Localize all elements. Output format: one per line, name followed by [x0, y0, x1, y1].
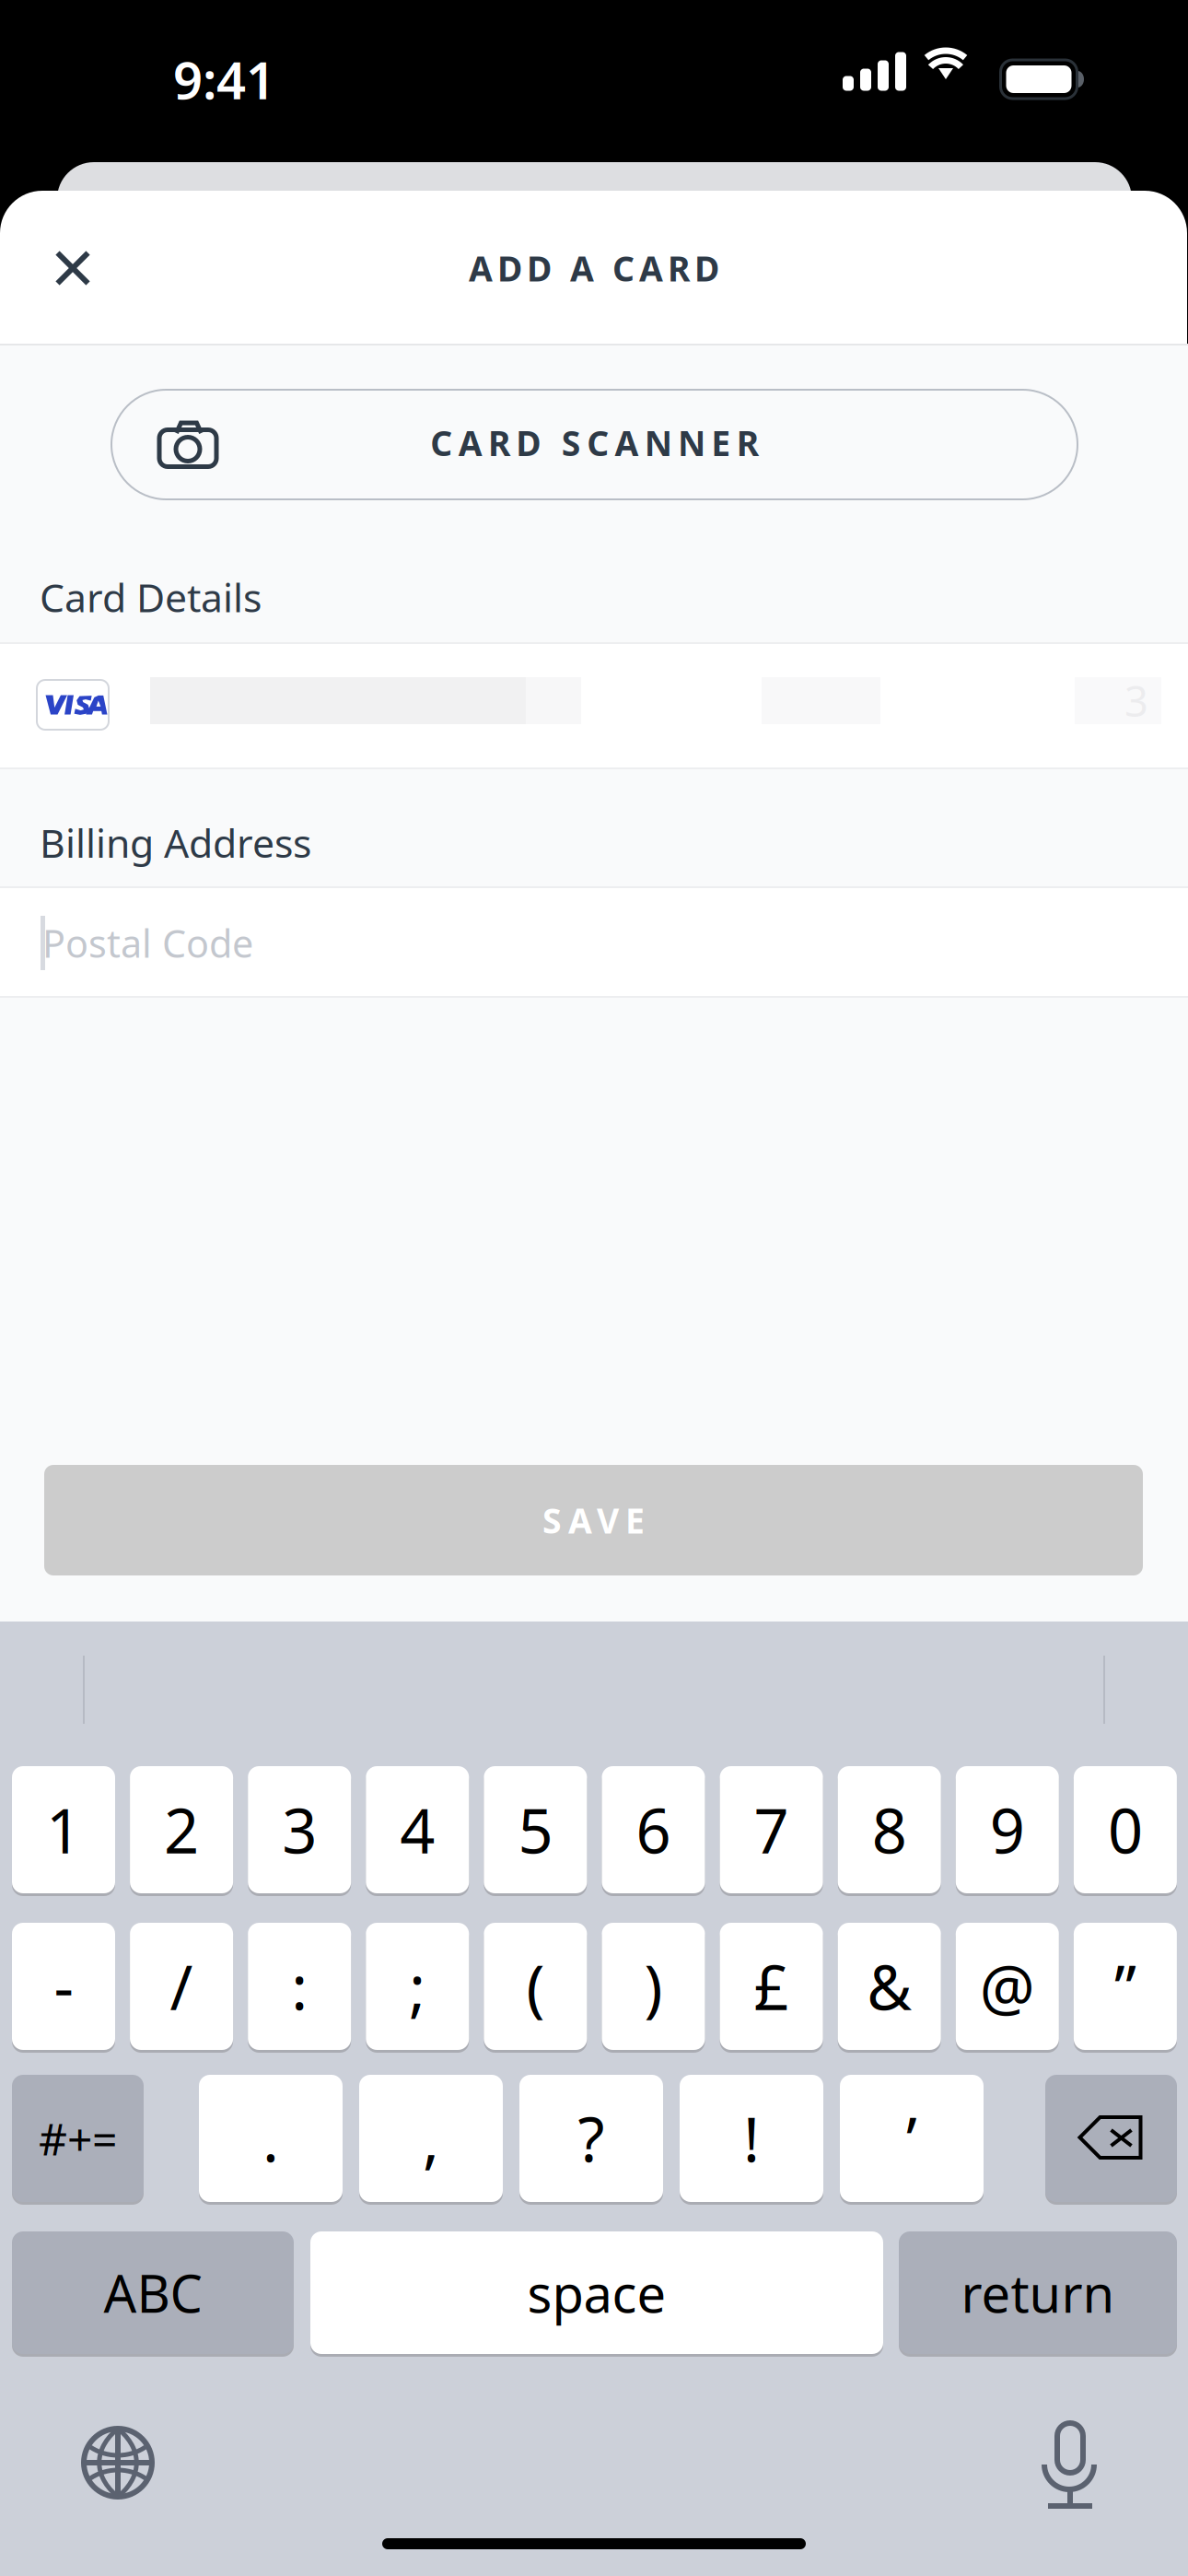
staticText: ADD A CARD [469, 245, 719, 291]
staticText: ! [743, 2098, 760, 2179]
staticText: CARD SCANNER [430, 420, 759, 466]
button[interactable]: 1 [12, 1765, 115, 1895]
staticText: @ [980, 1946, 1035, 2027]
staticText: 2 [164, 1789, 199, 1870]
button[interactable]: ” [1074, 1921, 1177, 2051]
staticText: 9:41 [173, 45, 275, 114]
button[interactable]: £ [720, 1921, 823, 2051]
button[interactable]: return [899, 2230, 1177, 2355]
button[interactable]: & [838, 1921, 941, 2051]
button[interactable]: 4 [366, 1765, 469, 1895]
button[interactable]: ’ [840, 2073, 984, 2203]
button[interactable]: ! [680, 2073, 823, 2203]
button[interactable]: 7 [720, 1765, 823, 1895]
staticText: , [423, 2098, 439, 2179]
button[interactable]: #+= [12, 2073, 144, 2203]
staticText: : [291, 1946, 308, 2027]
button[interactable]: 9 [956, 1765, 1059, 1895]
staticText: 3 [282, 1789, 317, 1870]
button[interactable]: , [359, 2073, 503, 2203]
button[interactable]: ; [366, 1921, 469, 2051]
button[interactable]: ( [484, 1921, 587, 2051]
button[interactable]: 6 [602, 1765, 705, 1895]
staticText: 0 [1108, 1789, 1143, 1870]
staticText: Postal Code [42, 918, 253, 968]
staticText: #+= [39, 2109, 117, 2168]
button[interactable]: 2 [130, 1765, 233, 1895]
staticText: ’ [906, 2098, 917, 2179]
staticText: 4 [400, 1789, 435, 1870]
button[interactable]: ) [602, 1921, 705, 2051]
staticText: 1 [46, 1789, 81, 1870]
staticText: ; [409, 1946, 426, 2027]
button[interactable]: - [12, 1921, 115, 2051]
button[interactable]: . [199, 2073, 343, 2203]
button[interactable]: CARD SCANNER [111, 390, 1077, 499]
staticText: £ [754, 1946, 789, 2027]
staticText: ) [644, 1946, 663, 2027]
staticText: ABC [104, 2258, 202, 2327]
button[interactable]: 5 [484, 1765, 587, 1895]
staticText: ” [1114, 1946, 1136, 2027]
button[interactable]: ? [519, 2073, 663, 2203]
button[interactable]: space [310, 2230, 883, 2355]
button[interactable]: Close [22, 217, 123, 319]
staticText: SAVE [542, 1497, 645, 1543]
button[interactable]: Delete [1045, 2073, 1177, 2203]
button[interactable]: 0 [1074, 1765, 1177, 1895]
staticText: 5 [518, 1789, 553, 1870]
button[interactable]: : [248, 1921, 351, 2051]
staticText: 3 [1124, 673, 1148, 728]
staticText: 9 [990, 1789, 1025, 1870]
button[interactable]: Postal Code [0, 888, 1188, 998]
staticText: Card Details [40, 571, 262, 623]
button[interactable]: @ [956, 1921, 1059, 2051]
staticText: 6 [636, 1789, 671, 1870]
staticText: 8 [872, 1789, 907, 1870]
staticText: & [867, 1946, 912, 2027]
staticText: ? [578, 2098, 605, 2179]
staticText: / [170, 1946, 193, 2027]
button[interactable]: ABC [12, 2230, 294, 2355]
button[interactable]: SAVE [44, 1465, 1143, 1575]
button[interactable]: 3 [248, 1765, 351, 1895]
button[interactable]: Dictate [1042, 2416, 1099, 2508]
button[interactable]: Card number, expiry and CVV [0, 644, 1188, 767]
staticText: - [54, 1946, 73, 2027]
staticText: . [262, 2098, 279, 2179]
staticText: 7 [754, 1789, 789, 1870]
button[interactable]: Change keyboard [82, 2427, 154, 2499]
staticText: Billing Address [40, 816, 311, 869]
button[interactable]: / [130, 1921, 233, 2051]
button[interactable]: 8 [838, 1765, 941, 1895]
staticText: return [961, 2258, 1115, 2327]
staticText: ( [526, 1946, 545, 2027]
staticText: space [527, 2258, 666, 2327]
